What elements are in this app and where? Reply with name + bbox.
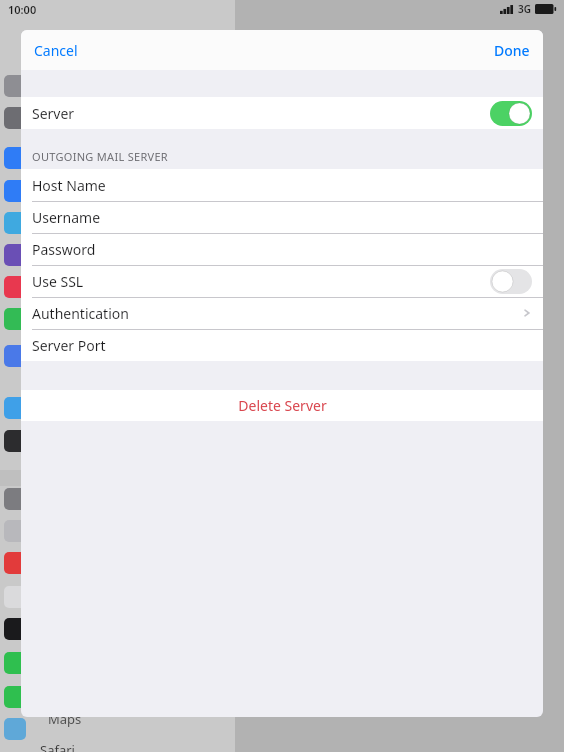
button[interactable]: Username [21, 201, 543, 233]
button[interactable]: Authentication [21, 297, 543, 329]
staticText: Server [32, 104, 75, 123]
button[interactable]: Server Port [21, 329, 543, 361]
staticText: Server Port [32, 336, 106, 355]
button[interactable]: Password [21, 233, 543, 265]
staticText: Use SSL [32, 272, 84, 291]
staticText: Safari [40, 741, 75, 752]
button[interactable]: Cancel [21, 33, 91, 68]
button[interactable]: Server [21, 97, 543, 129]
staticText: Host Name [32, 176, 106, 195]
staticText: Maps [48, 710, 82, 728]
staticText: Authentication [32, 304, 129, 323]
staticText: 10:00 [8, 2, 37, 17]
button[interactable]: Delete Server [21, 390, 543, 421]
staticText: Password [32, 240, 96, 259]
button[interactable]: Use SSL [21, 265, 543, 297]
staticText: Cancel [34, 41, 78, 60]
button[interactable]: Done [481, 33, 543, 68]
button[interactable]: Toggle on [490, 101, 532, 126]
staticText: Delete Server [238, 396, 327, 415]
staticText: 3G [518, 2, 531, 16]
button[interactable]: Toggle off [490, 269, 532, 294]
button[interactable]: Host Name [21, 169, 543, 201]
staticText: Done [494, 41, 530, 60]
staticText: Username [32, 208, 101, 227]
staticText: OUTGOING MAIL SERVER [32, 149, 168, 164]
